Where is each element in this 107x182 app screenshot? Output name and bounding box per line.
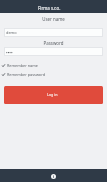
button[interactable]: Log in [4,86,103,104]
staticText: •••• [6,50,13,56]
staticText: User name [0,16,107,22]
button[interactable]: Info [47,169,60,182]
staticText: Remember password [7,72,45,77]
staticText: demo [6,30,17,35]
staticText: Log in [47,92,58,97]
button[interactable]: Remember password [2,72,45,77]
button[interactable]: •••• [4,47,103,56]
button[interactable]: demo [4,28,103,37]
staticText: Firma s.r.o. [38,5,61,11]
staticText: Remember name [7,63,38,68]
staticText: Password [0,40,107,46]
button[interactable]: Remember name [2,63,38,68]
